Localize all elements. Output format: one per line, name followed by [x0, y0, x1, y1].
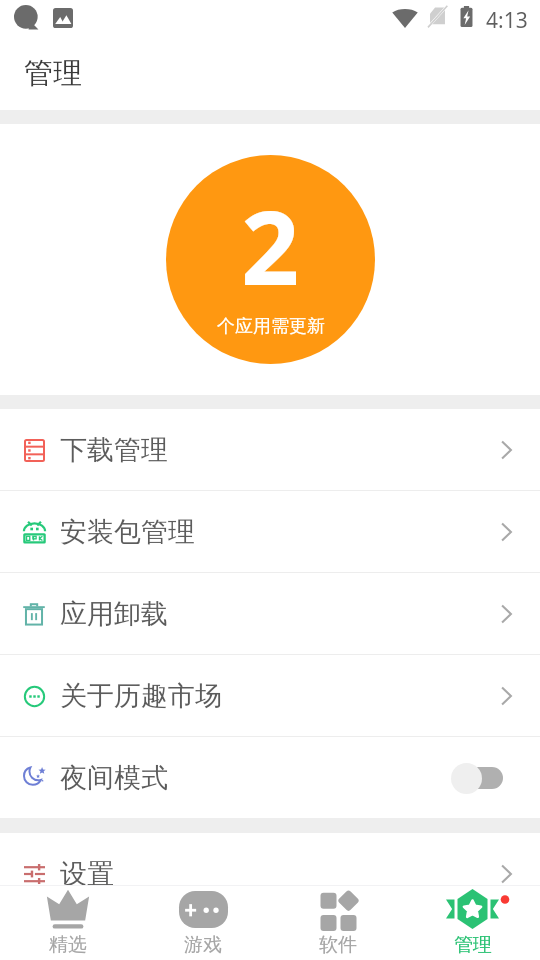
staticText: 夜间模式 — [60, 761, 168, 795]
button[interactable]: 设置 — [0, 833, 540, 914]
staticText: 精选 — [49, 933, 87, 957]
staticText: 应用卸载 — [60, 597, 168, 631]
button[interactable]: 夜间模式 — [0, 737, 540, 818]
staticText: 关于历趣市场 — [60, 679, 222, 713]
button[interactable]: Night mode toggle — [451, 761, 503, 795]
staticText: 软件 — [319, 933, 357, 957]
staticText: 管理 — [24, 55, 82, 92]
button[interactable]: 应用卸载 — [0, 573, 540, 654]
button[interactable]: 管理 — [405, 886, 540, 960]
other: Messages — [14, 5, 40, 31]
staticText: 4:13 — [486, 6, 528, 35]
staticText: 2 — [241, 176, 300, 315]
staticText: 游戏 — [184, 933, 222, 957]
button[interactable]: 下载管理 — [0, 409, 540, 490]
other: Battery — [460, 6, 473, 27]
button[interactable]: 精选 — [0, 886, 135, 960]
staticText: 个应用需更新 — [217, 315, 325, 338]
button[interactable]: 2 — [166, 155, 375, 364]
button[interactable]: 游戏 — [135, 886, 270, 960]
other: Wi-Fi — [392, 9, 418, 28]
button[interactable]: 软件 — [270, 886, 405, 960]
other: Screenshot — [53, 8, 73, 28]
staticText: 管理 — [454, 933, 492, 957]
staticText: 安装包管理 — [60, 515, 195, 549]
staticText: 设置 — [60, 857, 114, 891]
staticText: 下载管理 — [60, 433, 168, 467]
button[interactable]: 安装包管理 — [0, 491, 540, 572]
button[interactable]: 关于历趣市场 — [0, 655, 540, 736]
